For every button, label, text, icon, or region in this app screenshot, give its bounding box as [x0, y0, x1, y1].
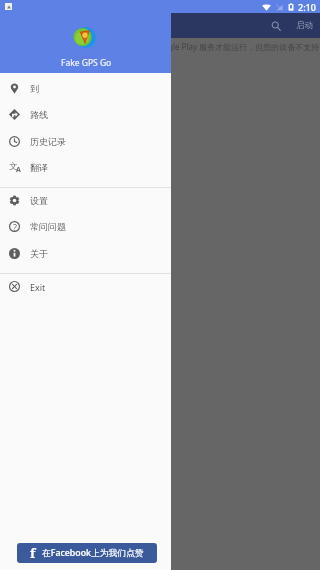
button[interactable]: ?	[0, 213, 171, 240]
button[interactable]: 设置	[0, 188, 171, 213]
button[interactable]: Search	[266, 16, 286, 36]
button[interactable]: 启动	[293, 16, 316, 35]
button[interactable]: 关于	[0, 240, 171, 267]
staticText: A	[16, 165, 21, 175]
staticText: 设置	[30, 195, 48, 206]
staticText: 到	[30, 83, 39, 94]
staticText: Fake GPS Go	[61, 57, 112, 69]
button[interactable]: Close navigation drawer	[171, 0, 320, 570]
staticText: f	[30, 544, 36, 562]
button[interactable]: f	[17, 543, 157, 563]
staticText: 关于	[30, 248, 48, 259]
button[interactable]: 历史记录	[0, 128, 171, 154]
button[interactable]: 到	[0, 75, 171, 101]
staticText: 文	[9, 161, 18, 172]
staticText: 历史记录	[30, 136, 66, 147]
staticText: 常问问题	[30, 221, 66, 232]
staticText: Exit	[30, 281, 46, 293]
staticText: 启动	[296, 20, 313, 31]
staticText: 2:10	[298, 1, 316, 13]
button[interactable]: 路线	[0, 101, 171, 128]
staticText: gle Play 服务才能运行，但您的设备不支持该服务	[168, 41, 320, 52]
button[interactable]: 文	[0, 154, 171, 181]
staticText: ?	[13, 221, 17, 232]
staticText: 在Facebook上为我们点赞	[42, 547, 144, 559]
button[interactable]: Exit	[0, 274, 171, 299]
staticText: 翻译	[30, 162, 48, 173]
staticText: 路线	[30, 109, 48, 120]
